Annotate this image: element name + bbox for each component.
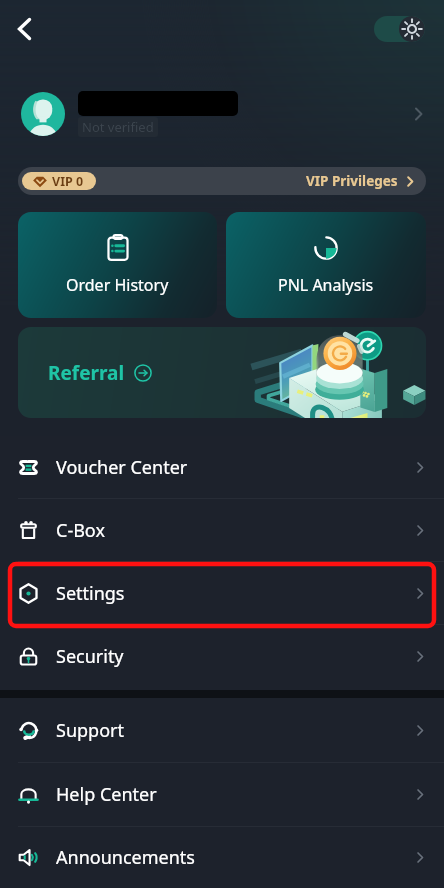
button[interactable]: Order History (18, 212, 217, 318)
staticText: C-Box (56, 518, 105, 543)
button[interactable]: VIP 0 (18, 167, 426, 195)
button[interactable]: Announcements (0, 827, 444, 888)
staticText: Support (56, 718, 124, 743)
button[interactable]: PNL Analysis (226, 212, 426, 318)
button[interactable]: Help Center (0, 763, 444, 826)
button[interactable]: Not verified (0, 86, 444, 142)
staticText: VIP 0 (52, 173, 84, 190)
staticText: Referral (48, 360, 125, 386)
button[interactable]: Voucher Center (0, 436, 444, 498)
staticText: Settings (56, 581, 125, 606)
button[interactable]: Referral (18, 327, 426, 418)
staticText: Order History (66, 274, 169, 296)
staticText: Help Center (56, 782, 157, 807)
staticText: PNL Analysis (278, 274, 374, 296)
staticText: Security (56, 644, 124, 669)
staticText: Announcements (56, 845, 195, 870)
staticText: Voucher Center (56, 455, 188, 480)
button[interactable]: Toggle theme (374, 16, 425, 42)
staticText: Not verified (82, 118, 154, 136)
staticText: VIP Privileges (306, 172, 398, 190)
button[interactable]: Security (0, 625, 444, 687)
button[interactable]: Support (0, 698, 444, 762)
button[interactable]: C-Box (0, 499, 444, 561)
button[interactable]: Back (4, 9, 44, 49)
button[interactable]: Settings (0, 562, 444, 624)
